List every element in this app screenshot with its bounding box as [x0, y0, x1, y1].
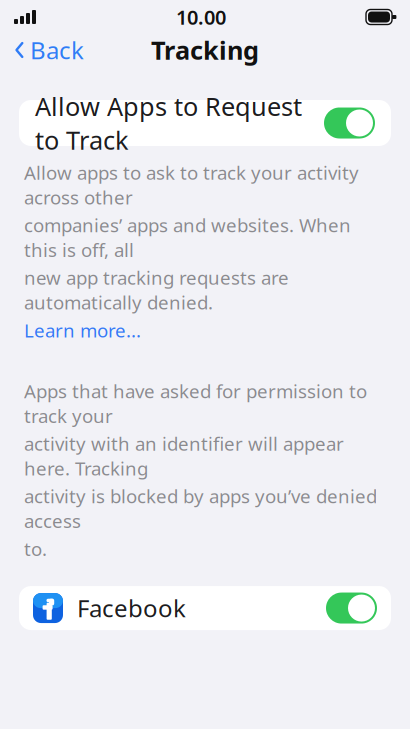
staticText: Facebook	[77, 592, 186, 624]
staticText: to.	[24, 536, 47, 561]
staticText: activity is blocked by apps you’ve denie…	[24, 484, 377, 533]
staticText: new app tracking requests are automatica…	[24, 265, 289, 315]
button[interactable]: Learn more...	[24, 318, 141, 342]
staticText: companies’ apps and websites. When this …	[24, 213, 351, 262]
staticText: 10.00	[176, 4, 226, 30]
staticText: activity with an identifier will appear …	[24, 431, 344, 481]
button[interactable]: Back	[4, 28, 94, 72]
staticText: Back	[30, 34, 84, 66]
button[interactable]: Toggle	[326, 593, 377, 624]
staticText: Tracking	[151, 33, 259, 67]
button[interactable]: Toggle	[324, 107, 375, 138]
staticText: Allow Apps to Request to Track	[35, 89, 302, 157]
staticText: Apps that have asked for permission to t…	[24, 378, 367, 428]
staticText: Learn more...	[24, 318, 141, 342]
staticText: Allow apps to ask to track your activity…	[24, 160, 359, 210]
